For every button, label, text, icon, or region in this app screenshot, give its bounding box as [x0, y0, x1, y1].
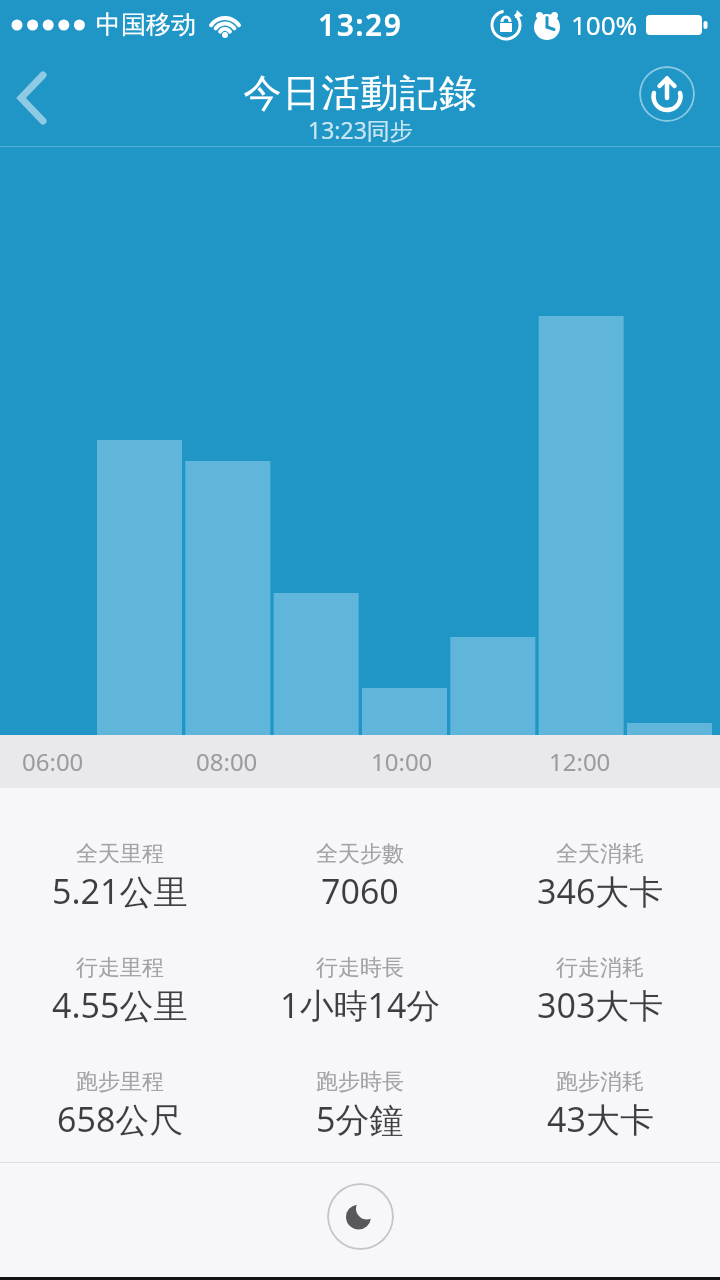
- button[interactable]: [639, 66, 695, 122]
- staticText: 跑步里程: [76, 1068, 164, 1096]
- button[interactable]: [4, 70, 60, 126]
- staticText: 行走時長: [316, 954, 404, 982]
- staticText: 12:00: [549, 745, 611, 778]
- staticText: 100%: [571, 7, 638, 42]
- staticText: 43大卡: [547, 1096, 654, 1142]
- staticText: 1小時14分: [280, 982, 441, 1028]
- staticText: 跑步時長: [316, 1068, 404, 1096]
- staticText: 06:00: [22, 745, 84, 778]
- staticText: 全天消耗: [556, 840, 644, 868]
- staticText: 行走消耗: [556, 954, 644, 982]
- staticText: 10:00: [371, 745, 433, 778]
- staticText: 5.21公里: [52, 868, 188, 914]
- staticText: 08:00: [196, 745, 258, 778]
- button[interactable]: [327, 1183, 394, 1250]
- staticText: 658公尺: [57, 1096, 184, 1142]
- staticText: 行走里程: [76, 954, 164, 982]
- staticText: 303大卡: [537, 982, 664, 1028]
- staticText: 7060: [321, 868, 399, 914]
- staticText: 今日活動記錄: [243, 69, 477, 117]
- staticText: 13:23同步: [308, 114, 413, 144]
- staticText: 全天步數: [316, 840, 404, 868]
- staticText: 跑步消耗: [556, 1068, 644, 1096]
- staticText: 13:29: [318, 4, 403, 45]
- staticText: 4.55公里: [52, 982, 188, 1028]
- staticText: 346大卡: [537, 868, 664, 914]
- staticText: 5分鐘: [316, 1096, 404, 1142]
- staticText: 全天里程: [76, 840, 164, 868]
- staticText: 中国移动: [96, 9, 196, 40]
